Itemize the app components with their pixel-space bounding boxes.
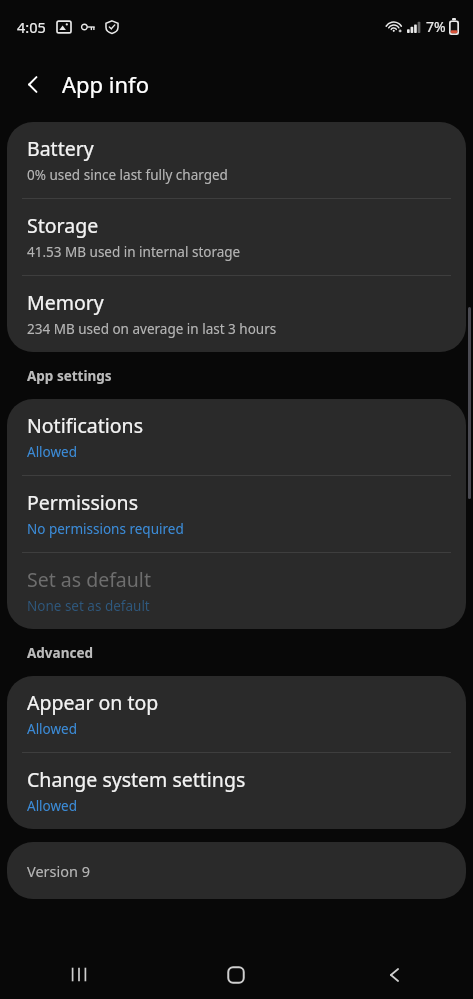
button[interactable]: Permissions [7,476,466,552]
button[interactable]: Appear on top [7,676,466,752]
staticText: 0% used since last fully charged [27,166,228,184]
button[interactable]: Back [11,62,55,106]
staticText: Memory [27,289,104,316]
button[interactable]: Back [315,950,473,999]
staticText: None set as default [27,597,150,615]
button[interactable]: Memory [7,276,466,352]
button[interactable]: Change system settings [7,753,466,829]
staticText: Allowed [27,797,78,815]
staticText: 4:05 [17,17,46,37]
staticText: Notifications [27,412,143,439]
staticText: Version 9 [27,861,91,881]
staticText: Change system settings [27,766,246,793]
staticText: App info [62,69,149,99]
button[interactable]: Notifications [7,399,466,475]
button[interactable]: Storage [7,199,466,275]
staticText: Allowed [27,720,78,738]
staticText: Set as default [27,566,151,593]
staticText: Permissions [27,489,139,516]
button[interactable]: Set as default [7,553,466,629]
staticText: Advanced [27,644,94,662]
staticText: 234 MB used on average in last 3 hours [27,320,277,338]
button[interactable]: Battery [7,122,466,198]
staticText: 7% [426,17,446,36]
staticText: Allowed [27,443,78,461]
button[interactable]: Home [157,950,315,999]
staticText: App settings [27,367,112,385]
staticText: Storage [27,212,99,239]
staticText: Appear on top [27,689,159,716]
staticText: No permissions required [27,520,184,538]
button[interactable]: Recent apps [0,950,157,999]
staticText: 41.53 MB used in internal storage [27,243,241,261]
staticText: Battery [27,135,94,162]
button[interactable]: Version 9 [7,842,466,899]
